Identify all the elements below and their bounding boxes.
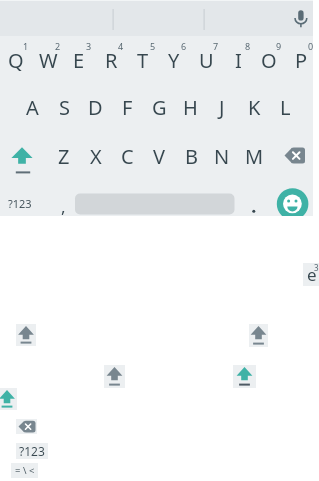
button[interactable]: K	[238, 87, 270, 128]
staticText: P	[295, 47, 308, 74]
button[interactable]	[0, 132, 47, 180]
button[interactable]	[233, 365, 256, 388]
staticText: B	[185, 143, 198, 170]
staticText: F	[122, 94, 133, 121]
button[interactable]: N	[206, 136, 238, 177]
staticText: X	[90, 143, 102, 170]
button[interactable]: G	[143, 87, 175, 128]
button[interactable]: M	[238, 136, 270, 177]
staticText: O	[261, 47, 277, 74]
staticText: Z	[58, 143, 70, 170]
staticText: J	[219, 94, 225, 121]
staticText: L	[280, 94, 291, 121]
button[interactable]: 3	[311, 262, 319, 273]
staticText: N	[214, 143, 230, 170]
button[interactable]	[0, 388, 17, 410]
button[interactable]: 8	[240, 39, 256, 53]
staticText: 7	[213, 40, 219, 52]
button[interactable]: V	[143, 136, 175, 177]
button[interactable]: A	[16, 87, 48, 128]
button[interactable]: P	[285, 40, 313, 80]
button[interactable]: 6	[176, 39, 192, 53]
button[interactable]: 3	[81, 39, 97, 53]
button[interactable]: e	[303, 263, 319, 286]
staticText: K	[248, 94, 261, 121]
staticText: A	[26, 94, 39, 121]
staticText: D	[88, 94, 103, 121]
button[interactable]: X	[80, 136, 112, 177]
staticText: 0	[308, 40, 313, 52]
staticText: = \ <	[15, 464, 35, 477]
staticText: 1	[23, 40, 29, 52]
staticText: 2	[55, 40, 61, 52]
staticText: ,	[61, 195, 66, 216]
button[interactable]	[104, 365, 125, 388]
button[interactable]: D	[79, 87, 111, 128]
staticText: R	[105, 47, 118, 74]
button[interactable]	[276, 188, 309, 216]
button[interactable]: ,	[55, 194, 71, 216]
staticText: 5	[150, 40, 156, 52]
button[interactable]	[271, 132, 313, 180]
staticText: C	[121, 143, 134, 170]
button[interactable]	[16, 324, 36, 346]
button[interactable]	[75, 180, 234, 216]
staticText: 3	[86, 40, 92, 52]
button[interactable]: T	[127, 40, 159, 80]
button[interactable]: E	[63, 40, 95, 80]
staticText: H	[183, 94, 198, 121]
button[interactable]: 0	[303, 39, 313, 53]
button[interactable]: U	[190, 40, 222, 80]
staticText: Q	[8, 47, 24, 74]
button[interactable]: 2	[50, 39, 66, 53]
button[interactable]: ?123	[16, 443, 48, 459]
button[interactable]: B	[175, 136, 207, 177]
button[interactable]	[249, 324, 268, 347]
button[interactable]: L	[269, 87, 301, 128]
button[interactable]: Q	[0, 40, 32, 80]
button[interactable]: R	[95, 40, 127, 80]
staticText: U	[199, 47, 214, 74]
button[interactable]: O	[253, 40, 285, 80]
button[interactable]: = \ <	[11, 463, 38, 478]
staticText: 6	[181, 40, 187, 52]
staticText: E	[73, 47, 85, 74]
staticText: 4	[118, 40, 124, 52]
button[interactable]: 5	[145, 39, 161, 53]
staticText: ?123	[8, 196, 32, 211]
button[interactable]	[0, 0, 313, 36]
button[interactable]: ?123	[6, 195, 34, 212]
staticText: e	[307, 263, 317, 286]
button[interactable]: 1	[18, 39, 34, 53]
button[interactable]: C	[111, 136, 143, 177]
staticText: 3	[314, 262, 319, 273]
button[interactable]: I	[222, 40, 254, 80]
staticText: G	[152, 94, 167, 121]
button[interactable]: 7	[208, 39, 224, 53]
staticText: T	[137, 47, 149, 74]
staticText: S	[59, 94, 70, 121]
button[interactable]	[16, 419, 37, 434]
staticText: ?123	[19, 443, 45, 459]
button[interactable]: H	[174, 87, 206, 128]
staticText: 8	[245, 40, 251, 52]
button[interactable]: 9	[271, 39, 287, 53]
button[interactable]: J	[206, 87, 238, 128]
button[interactable]: F	[111, 87, 143, 128]
button[interactable]: W	[32, 40, 64, 80]
staticText: W	[39, 47, 58, 74]
staticText: 9	[276, 40, 282, 52]
staticText: Y	[168, 47, 180, 74]
button[interactable]: Z	[48, 136, 80, 177]
staticText: V	[153, 143, 165, 170]
button[interactable]: 4	[113, 39, 129, 53]
button[interactable]: S	[48, 87, 80, 128]
button[interactable]: Y	[158, 40, 190, 80]
staticText: I	[235, 47, 242, 74]
staticText: M	[245, 143, 264, 170]
